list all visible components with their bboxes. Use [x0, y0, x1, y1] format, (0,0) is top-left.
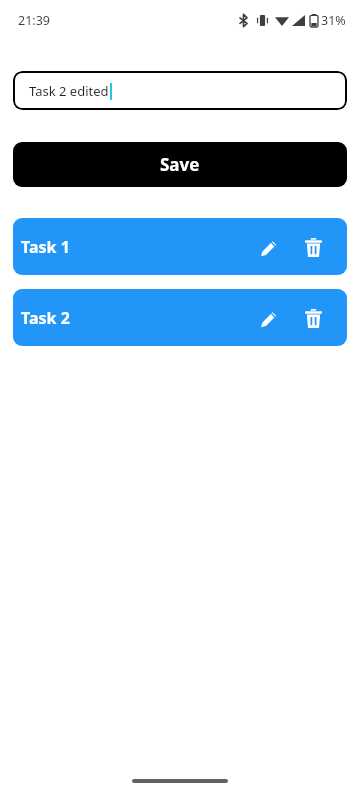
staticText: Save [160, 153, 200, 176]
button[interactable]: Task 2 edited [13, 71, 347, 110]
staticText: Task 2 edited [29, 82, 109, 100]
button[interactable]: Task 2 [13, 289, 347, 346]
button[interactable]: Save [13, 142, 347, 187]
button[interactable]: Edit [249, 227, 289, 267]
staticText: Task 1 [21, 236, 249, 258]
staticText: Task 2 [21, 307, 249, 329]
button[interactable]: Delete [293, 298, 333, 338]
button[interactable]: Task 1 [13, 218, 347, 275]
button[interactable]: Delete [293, 227, 333, 267]
staticText: 31% [321, 12, 346, 29]
button[interactable]: Edit [249, 298, 289, 338]
staticText: 21:39 [18, 12, 50, 29]
